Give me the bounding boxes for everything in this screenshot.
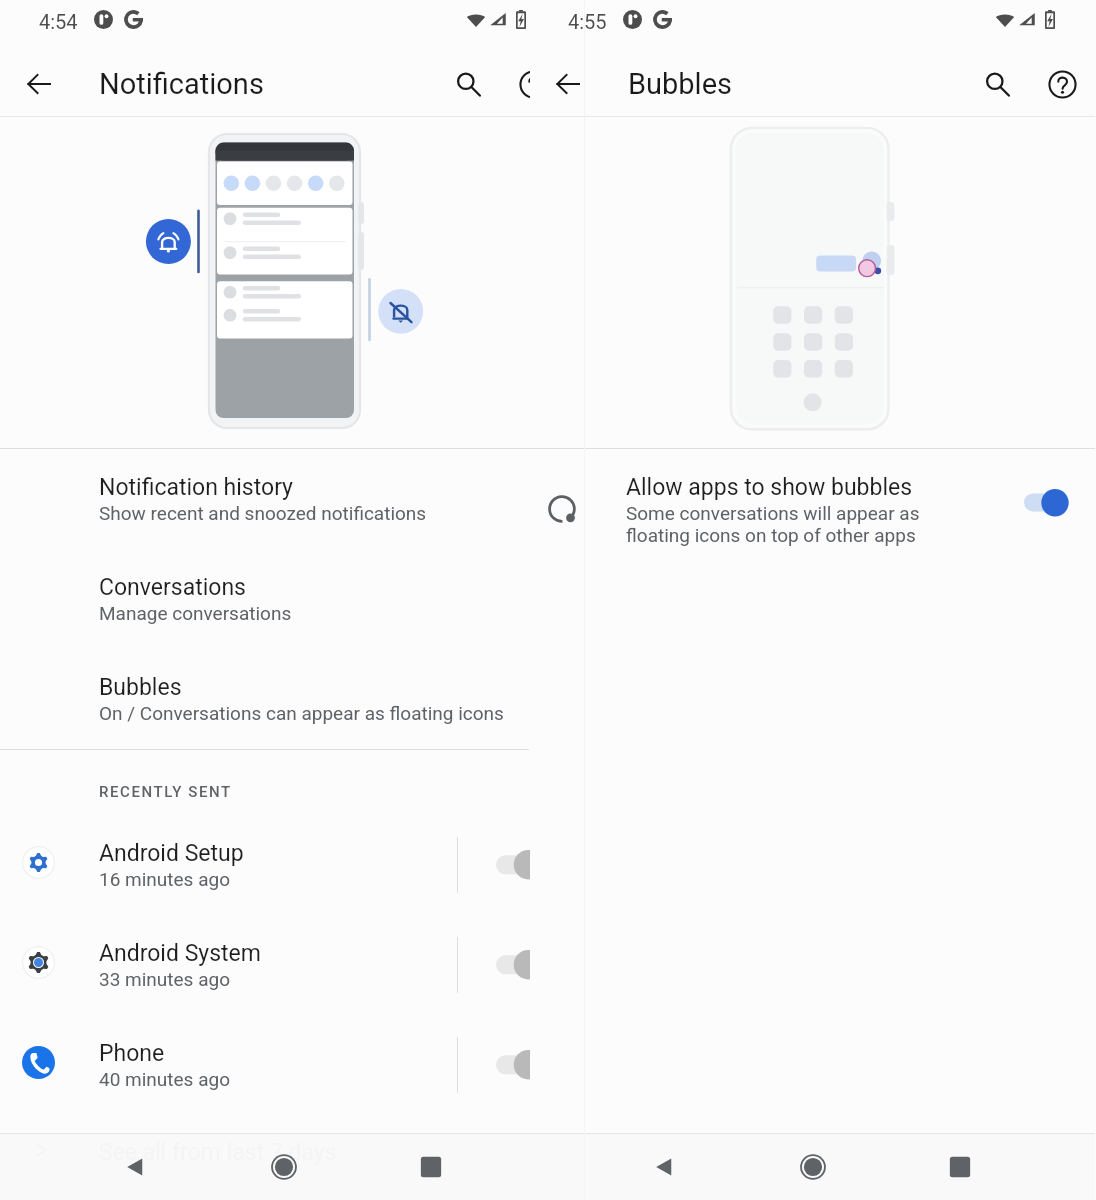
staticText: Android Setup [99,840,244,867]
staticText: Conversations [99,574,246,601]
staticText: Bubbles [99,674,182,701]
staticText: 4:55 [568,10,607,33]
staticText: 16 minutes ago [99,868,230,890]
button[interactable]: Toggle Phone [470,1015,566,1115]
staticText: Show recent and snoozed notifications [99,502,427,524]
button[interactable]: Allow apps to show bubbles [540,449,1095,609]
button[interactable]: Recents [409,1134,453,1200]
staticText: Phone [99,1040,165,1067]
staticText: Notifications [99,67,264,101]
button[interactable]: Back [113,1134,157,1200]
button[interactable]: Allow apps to show bubbles toggle [1001,480,1071,528]
button[interactable]: Search [975,62,1019,106]
staticText: Notification history [99,474,294,501]
button[interactable]: Conversations [0,549,566,649]
staticText: 33 minutes ago [99,968,230,990]
staticText: Bubbles [628,67,733,101]
button[interactable]: See all from last 7 days [0,1115,566,1200]
button[interactable]: Toggle Android System [470,915,566,1015]
button[interactable]: Back [546,62,590,106]
button[interactable]: Help [511,62,555,106]
staticText: See all from last 7 days [99,1139,337,1166]
button[interactable]: Home [262,1134,306,1200]
button[interactable]: Android Setup [0,815,566,915]
staticText: 4:54 [39,10,78,33]
button[interactable]: Search [446,62,490,106]
staticText: Manage conversations [99,602,292,624]
staticText: 40 minutes ago [99,1068,230,1090]
button[interactable]: Help [1040,62,1084,106]
button[interactable]: Toggle Android Setup [470,815,566,915]
button[interactable]: Notification history [0,449,566,549]
button[interactable]: Recents [938,1134,982,1200]
staticText: Some conversations will appear as floati… [626,502,920,547]
staticText: Android System [99,940,261,967]
button[interactable]: Home [791,1134,835,1200]
button[interactable]: Back [17,62,61,106]
button[interactable]: Back [642,1134,686,1200]
staticText: RECENTLY SENT [99,783,232,801]
button[interactable]: Android System [0,915,566,1015]
button[interactable]: Phone [0,1015,566,1115]
staticText: Allow apps to show bubbles [626,474,913,501]
button[interactable]: Bubbles [0,649,566,749]
staticText: On / Conversations can appear as floatin… [99,702,504,724]
